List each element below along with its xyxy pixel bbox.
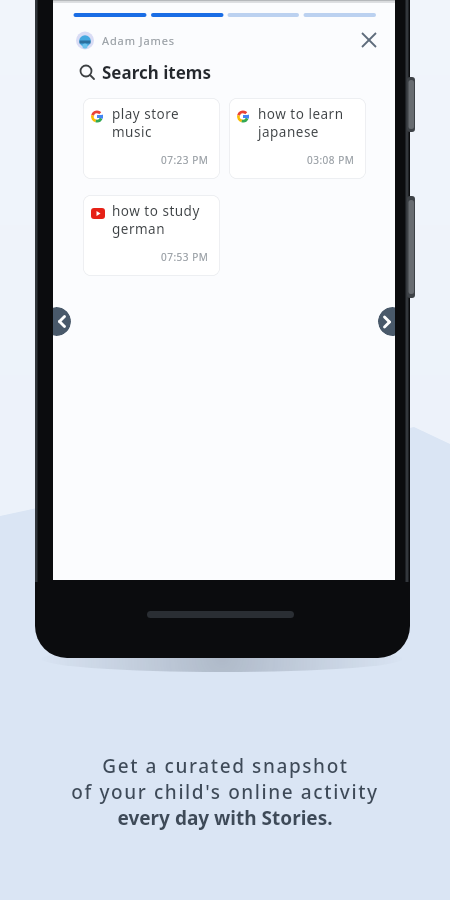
staticText: music	[112, 123, 152, 141]
staticText: 03:08 PM	[307, 153, 355, 167]
staticText: 07:53 PM	[161, 250, 209, 264]
staticText: every day with Stories.	[117, 805, 333, 831]
button[interactable]	[53, 307, 71, 336]
staticText: how to learn	[258, 105, 344, 123]
button[interactable]	[378, 307, 395, 336]
button[interactable]: how to learn	[229, 98, 366, 179]
staticText: play store	[112, 105, 180, 123]
button[interactable]: how to study	[83, 195, 220, 276]
staticText: 07:23 PM	[161, 153, 209, 167]
staticText: of your child's online activity	[71, 779, 379, 805]
button[interactable]: play store	[83, 98, 220, 179]
staticText: japanese	[258, 123, 319, 141]
staticText: Get a curated snapshot	[102, 753, 349, 779]
staticText: how to study	[112, 202, 200, 220]
staticText: Search items	[102, 61, 211, 83]
staticText: german	[112, 220, 166, 238]
staticText: Adam James	[102, 33, 176, 48]
button[interactable]: Search items	[102, 61, 211, 83]
